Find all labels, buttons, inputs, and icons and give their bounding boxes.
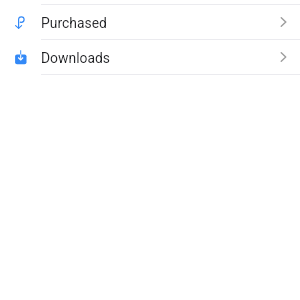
other: Downloads [0, 40, 40, 74]
staticText: Downloads [41, 50, 111, 66]
button[interactable]: Purchased [0, 5, 300, 39]
button[interactable]: Downloads [0, 40, 300, 74]
staticText: Purchased [41, 15, 107, 31]
other: Purchased [0, 5, 40, 39]
other: Open Purchased [280, 17, 287, 27]
other: Open Downloads [280, 52, 287, 62]
